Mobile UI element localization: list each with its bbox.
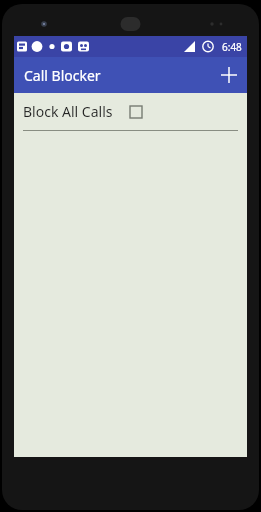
staticText: Call Blocker [24,66,101,85]
button[interactable]: Add [211,57,247,93]
staticText: Block All Calls [23,102,113,121]
staticText: 6:48 [222,40,242,54]
button[interactable]: Block All Calls [14,93,247,130]
